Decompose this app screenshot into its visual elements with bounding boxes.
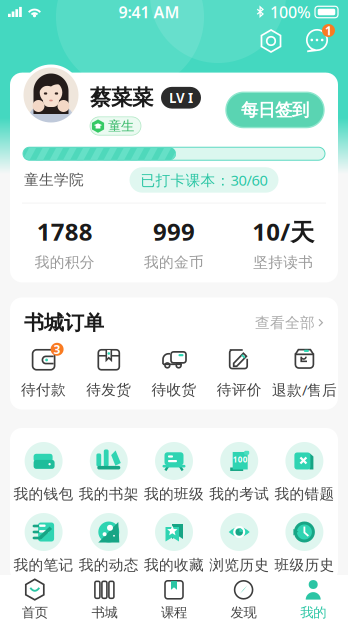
staticText: 100	[233, 454, 248, 465]
button[interactable]: 浏览历史	[207, 513, 272, 574]
button[interactable]: 首页	[0, 572, 70, 623]
staticText: 蔡菜菜	[90, 85, 153, 111]
button[interactable]: 每日签到	[226, 92, 324, 128]
button[interactable]: 课程	[139, 572, 209, 623]
staticText: 我的笔记	[14, 556, 74, 574]
staticText: 9:41 AM	[118, 1, 179, 23]
button[interactable]: 3	[11, 348, 76, 399]
staticText: 1788	[37, 215, 93, 247]
button[interactable]: 待发货	[76, 348, 141, 399]
button[interactable]: 我的收藏	[141, 513, 207, 574]
staticText: 待付款	[21, 381, 66, 399]
staticText: 10/天	[252, 215, 314, 247]
staticText: 我的动态	[79, 556, 139, 574]
button[interactable]: 我的错题	[272, 442, 337, 503]
staticText: 我的钱包	[14, 485, 74, 503]
staticText: 待发货	[86, 381, 131, 399]
staticText: 发现	[231, 604, 257, 621]
staticText: 首页	[22, 604, 48, 621]
staticText: 待评价	[217, 381, 262, 399]
staticText: 999	[153, 215, 195, 247]
button[interactable]: 我的书架	[76, 442, 141, 503]
staticText: 我的班级	[144, 485, 204, 503]
staticText: 浏览历史	[209, 556, 269, 574]
staticText: 坚持读书	[253, 253, 313, 271]
staticText: 3	[54, 341, 61, 357]
button[interactable]: 我的班级	[141, 442, 207, 503]
staticText: 童生	[108, 118, 134, 134]
button[interactable]: 我的钱包	[11, 442, 76, 503]
staticText: 待收货	[151, 381, 196, 399]
button[interactable]: Messages	[302, 26, 332, 56]
staticText: 我的积分	[35, 253, 95, 271]
button[interactable]: 100	[207, 442, 272, 503]
staticText: 童生学院	[24, 171, 84, 189]
button[interactable]: 我的笔记	[11, 513, 76, 574]
button[interactable]: 退款/售后	[272, 347, 337, 399]
button[interactable]: 书城	[70, 572, 139, 623]
staticText: 我的	[300, 604, 326, 621]
staticText: 退款/售后	[272, 380, 337, 399]
staticText: 班级历史	[274, 556, 334, 574]
button[interactable]: 10/天	[229, 215, 338, 271]
button[interactable]: 发现	[209, 572, 278, 623]
staticText: 书城	[91, 604, 117, 621]
staticText: 查看全部	[255, 314, 315, 332]
staticText: 我的收藏	[144, 556, 204, 574]
button[interactable]: Settings	[256, 26, 286, 56]
staticText: 我的考试	[209, 485, 269, 503]
staticText: 课程	[161, 604, 187, 621]
button[interactable]: 待收货	[141, 348, 207, 399]
staticText: 已打卡课本：30/60	[140, 170, 267, 190]
button[interactable]: 待评价	[207, 348, 272, 399]
button[interactable]: 我的	[278, 572, 348, 623]
button[interactable]: 我的动态	[76, 513, 141, 574]
button[interactable]: 1788	[10, 215, 119, 271]
staticText: 1	[325, 22, 332, 38]
staticText: 书城订单	[24, 310, 104, 335]
button[interactable]: 班级历史	[272, 513, 337, 574]
button[interactable]: 查看全部	[255, 314, 324, 332]
staticText: 我的错题	[274, 485, 334, 503]
staticText: 我的书架	[79, 485, 139, 503]
button[interactable]: 999	[119, 215, 229, 271]
staticText: LV I	[169, 89, 193, 107]
staticText: 100%	[270, 1, 311, 23]
staticText: 每日签到	[241, 99, 309, 121]
staticText: 我的金币	[144, 253, 204, 271]
